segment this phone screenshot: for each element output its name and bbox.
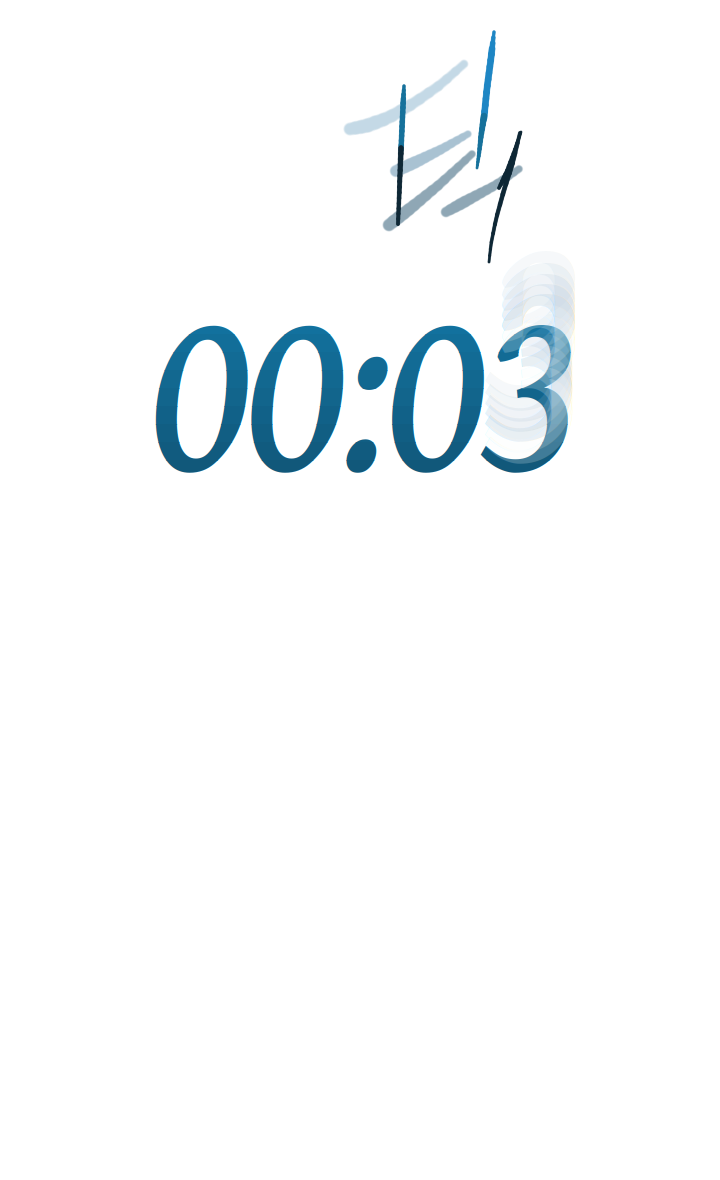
staticText: 3: [486, 177, 586, 525]
staticText: 00:03: [150, 208, 582, 556]
staticText: 00:03: [150, 208, 582, 556]
staticText: 3: [486, 167, 586, 515]
staticText: 00:03: [150, 208, 582, 556]
staticText: 3: [486, 134, 586, 482]
staticText: 00:03: [150, 208, 582, 556]
staticText: 00:03: [150, 208, 582, 556]
staticText: 00:03: [150, 208, 582, 556]
staticText: 00:03: [150, 208, 582, 556]
staticText: 00:03: [150, 208, 582, 556]
staticText: 00:03: [150, 208, 582, 556]
button[interactable]: 00:03 remaining: [150, 208, 590, 508]
staticText: 00:03: [150, 208, 582, 556]
staticText: 00:03: [150, 208, 582, 556]
staticText: 3: [486, 146, 586, 494]
staticText: 00:03: [150, 208, 582, 556]
staticText: 3: [486, 188, 586, 536]
staticText: 00:03: [150, 208, 582, 556]
staticText: 00:03: [150, 208, 582, 556]
staticText: 3: [486, 155, 586, 503]
staticText: 3: [486, 166, 586, 514]
staticText: 3: [486, 157, 586, 505]
staticText: 00:03: [150, 208, 582, 556]
staticText: 3: [486, 199, 586, 547]
staticText: 3: [486, 177, 586, 525]
staticText: 00:03: [150, 208, 582, 556]
